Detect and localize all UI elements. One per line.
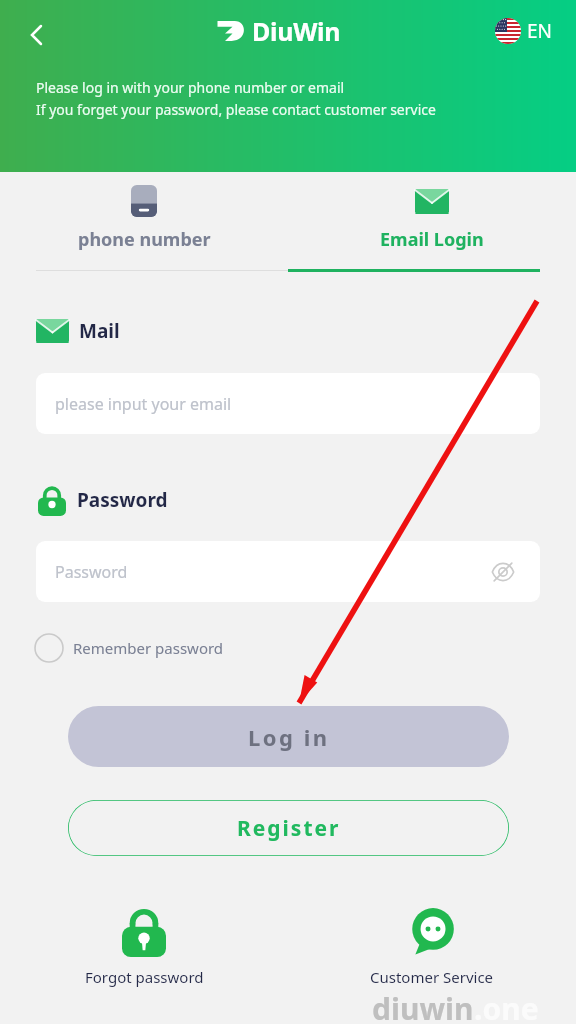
button[interactable]: Show password [488,557,518,587]
button[interactable]: Email Login [288,180,576,269]
staticText: Forgot password [85,967,204,987]
button[interactable]: please input your email [36,373,540,434]
button[interactable]: Back [14,12,60,58]
staticText: Remember password [73,638,224,658]
staticText: Mail [79,318,120,344]
staticText: Register [237,814,341,843]
staticText: EN [527,18,553,44]
staticText: please input your email [55,393,232,415]
staticText: DiuWin [252,14,341,48]
staticText: diuwin [372,988,474,1024]
staticText: Email Login [380,227,484,252]
button[interactable]: Register [68,800,509,856]
staticText: Please log in with your phone number or … [36,78,345,97]
button[interactable]: Password [36,541,540,602]
staticText: Log in [248,722,330,752]
staticText: .one [474,988,539,1024]
staticText: Password [55,561,128,583]
staticText: phone number [78,227,211,252]
staticText: If you forget your password, please cont… [36,100,436,119]
staticText: Customer Service [370,967,494,987]
button[interactable]: EN [495,18,553,44]
button[interactable]: phone number [0,180,288,269]
button[interactable]: Remember password [34,633,224,663]
button[interactable]: Customer Service [288,905,576,987]
button[interactable]: Forgot password [0,905,288,987]
staticText: Password [77,487,168,513]
button[interactable]: Log in [68,706,509,767]
